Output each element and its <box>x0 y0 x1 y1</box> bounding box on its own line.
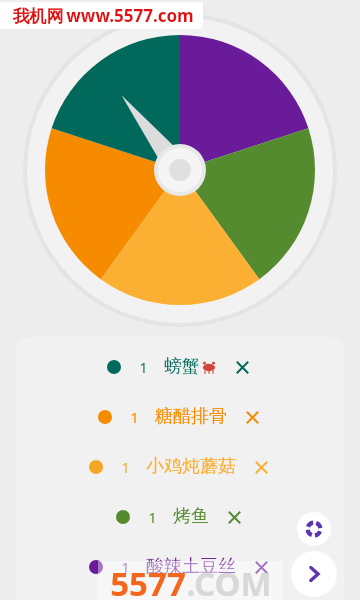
staticText: .COM <box>186 561 272 600</box>
staticText: www.5577.com <box>66 4 194 27</box>
button[interactable]: 1 <box>16 491 344 541</box>
staticText: 1 <box>130 407 139 427</box>
staticText: 1 <box>121 457 130 477</box>
button[interactable]: Remove 小鸡炖蘑菇 <box>250 456 272 478</box>
button[interactable]: 1 <box>16 441 344 491</box>
button[interactable]: Remove 糖醋排骨 <box>241 406 263 428</box>
button[interactable]: Reset wheel <box>297 512 331 546</box>
button[interactable]: Remove 烤鱼 <box>223 506 245 528</box>
staticText: 糖醋排骨 <box>155 405 227 428</box>
button[interactable]: 1 <box>16 391 344 441</box>
staticText: 5577 <box>110 561 186 600</box>
button[interactable]: 1 <box>16 341 344 391</box>
staticText: 1 <box>139 357 148 377</box>
staticText: 小鸡炖蘑菇 <box>146 455 236 478</box>
button[interactable]: Remove 螃蟹 <box>231 356 253 378</box>
staticText: 酸辣土豆丝 <box>146 555 236 578</box>
staticText: 1 <box>121 557 130 577</box>
button[interactable]: Remove 酸辣土豆丝 <box>250 556 272 578</box>
button[interactable]: Next <box>291 551 337 597</box>
button[interactable]: 1 <box>16 541 344 591</box>
staticText: 我机网 <box>10 4 66 27</box>
staticText: 1 <box>148 507 157 527</box>
staticText: 烤鱼 <box>173 505 209 528</box>
staticText: 螃蟹 <box>164 355 200 378</box>
